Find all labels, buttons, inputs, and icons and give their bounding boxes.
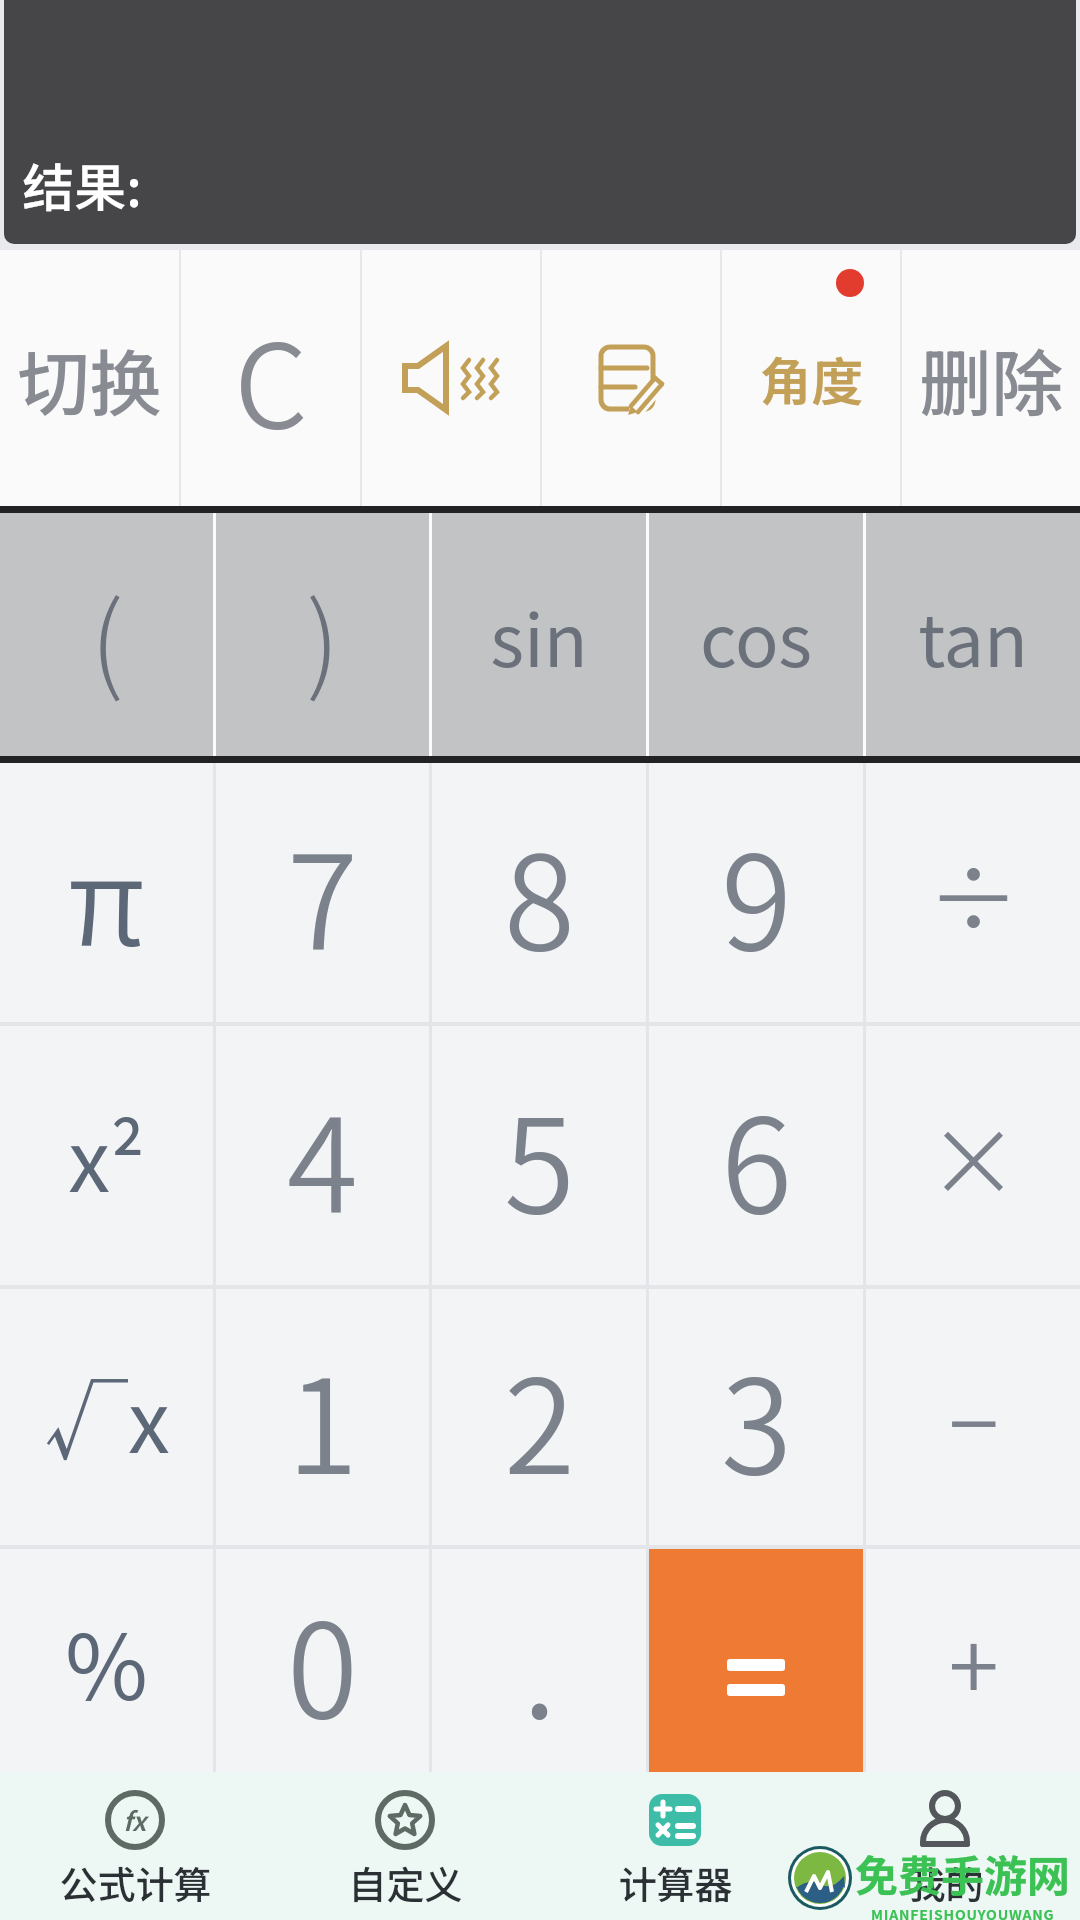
button[interactable]: % — [0, 1549, 213, 1772]
button[interactable]: × — [866, 1026, 1080, 1285]
staticText: 自定义 — [348, 1855, 463, 1910]
staticText: MIANFEISHOUYOUWANG — [871, 1904, 1055, 1920]
staticText: . — [522, 1567, 557, 1755]
staticText: ÷ — [927, 826, 1020, 959]
button[interactable]: 我的 — [810, 1772, 1080, 1920]
button[interactable]: ( — [0, 513, 213, 756]
staticText: tan — [918, 583, 1028, 687]
button[interactable]: 9 — [649, 763, 863, 1022]
staticText: 切换 — [17, 326, 162, 430]
staticText: 公式计算 — [59, 1855, 212, 1910]
button[interactable] — [542, 250, 720, 506]
button[interactable] — [649, 1549, 863, 1772]
staticText: 1 — [287, 1323, 358, 1511]
staticText: 我的 — [907, 1855, 984, 1910]
staticText: 7 — [287, 799, 358, 987]
staticText: 5 — [504, 1062, 575, 1250]
staticText: ( — [90, 558, 124, 711]
staticText: 角度 — [759, 341, 864, 416]
staticText: cos — [700, 583, 812, 687]
staticText: 6 — [721, 1062, 792, 1250]
button[interactable]: fx — [0, 1772, 270, 1920]
staticText: 8 — [504, 799, 575, 987]
staticText: 免费手游网 — [855, 1842, 1070, 1904]
button[interactable]: 6 — [649, 1026, 863, 1285]
button[interactable]: 7 — [216, 763, 429, 1022]
staticText: 2 — [504, 1323, 575, 1511]
button[interactable]: tan — [866, 513, 1080, 756]
button[interactable]: . — [432, 1549, 646, 1772]
staticText: 9 — [721, 799, 792, 987]
staticText: x² — [68, 1095, 145, 1217]
button[interactable]: 5 — [432, 1026, 646, 1285]
button[interactable]: + — [866, 1549, 1080, 1772]
staticText: √x — [44, 1356, 170, 1478]
button[interactable]: 计算器 — [540, 1772, 810, 1920]
button[interactable]: 切换 — [0, 250, 179, 506]
staticText: − — [948, 1351, 999, 1484]
staticText: π — [68, 806, 145, 980]
button[interactable]: 自定义 — [270, 1772, 540, 1920]
button[interactable]: 3 — [649, 1289, 863, 1545]
button[interactable]: x² — [0, 1026, 213, 1285]
staticText: 计算器 — [618, 1855, 733, 1910]
staticText: 删除 — [919, 326, 1064, 430]
button[interactable]: 8 — [432, 763, 646, 1022]
button[interactable]: cos — [649, 513, 863, 756]
button[interactable]: √x — [0, 1289, 213, 1545]
button[interactable]: 0 — [216, 1549, 429, 1772]
button[interactable]: 2 — [432, 1289, 646, 1545]
button[interactable]: 删除 — [902, 250, 1080, 506]
staticText: 0 — [287, 1567, 358, 1755]
button[interactable]: 4 — [216, 1026, 429, 1285]
staticText: % — [65, 1596, 148, 1726]
button[interactable]: 结果: — [4, 0, 1076, 244]
button[interactable] — [362, 250, 540, 506]
button[interactable]: C — [181, 250, 360, 506]
staticText: ) — [306, 558, 340, 711]
staticText: × — [927, 1089, 1020, 1222]
button[interactable]: sin — [432, 513, 646, 756]
button[interactable]: π — [0, 763, 213, 1022]
button[interactable]: ) — [216, 513, 429, 756]
button[interactable]: 1 — [216, 1289, 429, 1545]
button[interactable]: ÷ — [866, 763, 1080, 1022]
button[interactable]: − — [866, 1289, 1080, 1545]
staticText: C — [234, 294, 308, 462]
staticText: 结果: — [22, 147, 142, 222]
staticText: fx — [123, 1801, 147, 1839]
staticText: sin — [490, 583, 588, 687]
staticText: 4 — [287, 1062, 358, 1250]
staticText: 3 — [721, 1323, 792, 1511]
staticText: + — [948, 1594, 999, 1727]
button[interactable]: 角度 — [722, 250, 900, 506]
